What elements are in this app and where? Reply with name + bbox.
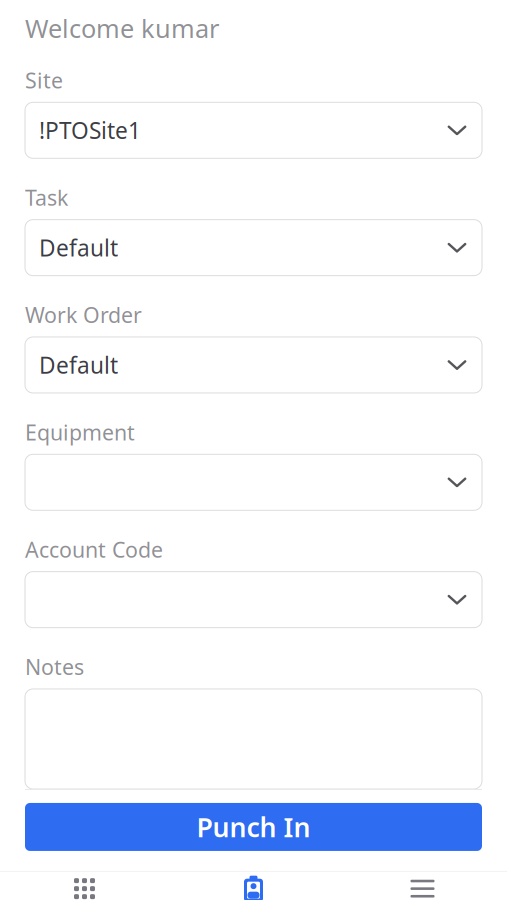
- staticText: Default: [39, 350, 118, 380]
- staticText: Equipment: [25, 418, 135, 446]
- staticText: Task: [25, 183, 68, 212]
- staticText: Site: [25, 66, 63, 94]
- staticText: Default: [39, 233, 118, 263]
- button[interactable]: [25, 572, 482, 628]
- button[interactable]: Punch In/Out: [169, 870, 338, 900]
- button[interactable]: Default: [25, 220, 482, 276]
- button[interactable]: !PTOSite1: [25, 102, 482, 158]
- button[interactable]: Dashboard: [0, 870, 169, 900]
- button[interactable]: Punch In: [25, 803, 482, 851]
- staticText: Account Code: [25, 535, 163, 564]
- button[interactable]: [25, 454, 482, 510]
- staticText: Punch In: [196, 809, 310, 845]
- staticText: Notes: [25, 653, 84, 681]
- button[interactable]: More Options: [338, 870, 507, 900]
- staticText: !PTOSite1: [39, 115, 141, 145]
- staticText: Work Order: [25, 301, 142, 329]
- staticText: Welcome kumar: [25, 11, 219, 45]
- button[interactable]: Default: [25, 337, 482, 393]
